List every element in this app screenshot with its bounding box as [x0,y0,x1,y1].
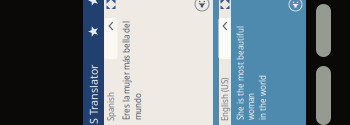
button[interactable]: Collapse panel [182,110,223,123]
button[interactable]: Full screen [232,112,241,121]
button[interactable]: Hablar Spanish [316,66,331,125]
staticText: mundo [121,24,148,35]
button[interactable]: Collapse panel [182,0,223,9]
staticText: English (US) [120,111,163,122]
staticText: Eres la mujer más bella del [121,12,220,23]
button[interactable]: Play Spanish audio [230,86,244,100]
button[interactable]: Speak English US [316,4,331,57]
